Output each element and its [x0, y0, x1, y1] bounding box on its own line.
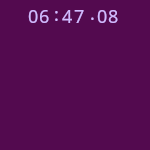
staticText: 6 — [39, 4, 50, 29]
button[interactable]: Stopwatch elapsed time 06:47.08 — [0, 0, 150, 150]
staticText: . — [90, 1, 95, 26]
staticText: 0 — [97, 4, 108, 29]
staticText: 7 — [74, 4, 85, 29]
staticText: 0 — [28, 4, 39, 29]
staticText: : — [54, 2, 59, 27]
staticText: 8 — [108, 4, 119, 29]
staticText: 4 — [62, 4, 73, 29]
